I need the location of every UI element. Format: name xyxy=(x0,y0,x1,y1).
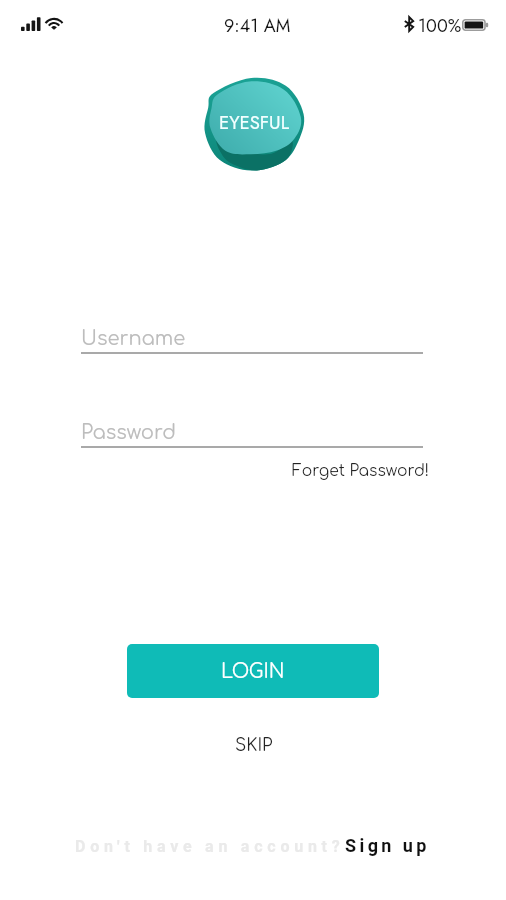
button[interactable]: Sign up xyxy=(345,835,430,856)
staticText: SKIP xyxy=(235,736,273,755)
staticText: Don't have an account? xyxy=(75,837,345,856)
staticText: Sign up xyxy=(345,835,430,856)
staticText: EYESFUL xyxy=(219,109,290,136)
button[interactable]: LOGIN xyxy=(127,644,379,698)
button[interactable]: Forget Password! xyxy=(288,458,434,483)
staticText: 9:41 AM xyxy=(224,13,291,39)
staticText: LOGIN xyxy=(221,661,285,682)
staticText: Password xyxy=(81,422,176,444)
staticText: 100% xyxy=(418,13,462,39)
staticText: Username xyxy=(81,328,186,350)
button[interactable]: SKIP xyxy=(229,730,279,761)
staticText: Forget Password! xyxy=(292,462,430,479)
